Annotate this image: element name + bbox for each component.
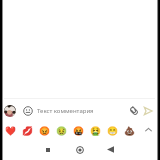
button[interactable]: Send comment: [143, 106, 153, 116]
button[interactable]: 🤢: [56, 125, 67, 136]
staticText: 🤢: [56, 126, 67, 136]
button[interactable]: 💩: [124, 125, 135, 136]
button[interactable]: 💋: [22, 125, 33, 136]
staticText: 🤮: [90, 126, 101, 136]
button[interactable]: Recent apps: [43, 145, 52, 154]
staticText: 😁: [107, 126, 118, 136]
staticText: 🤬: [73, 126, 84, 136]
button[interactable]: Home: [75, 145, 84, 154]
staticText: 😡: [39, 126, 50, 136]
button[interactable]: 😡: [39, 125, 50, 136]
button[interactable]: 😁: [107, 125, 118, 136]
staticText: 💩: [124, 126, 135, 136]
button[interactable]: 🤮: [90, 125, 101, 136]
button[interactable]: Back: [106, 145, 115, 154]
button[interactable]: Insert emoji: [23, 106, 33, 116]
staticText: ❤️: [5, 126, 16, 136]
button[interactable]: Attach file: [129, 106, 139, 116]
button[interactable]: Show more reactions: [143, 124, 154, 135]
staticText: Текст комментария: [37, 107, 94, 115]
button[interactable]: Your profile: [4, 105, 16, 117]
button[interactable]: ❤️: [5, 125, 16, 136]
button[interactable]: 🤬: [73, 125, 84, 136]
staticText: 💋: [22, 126, 33, 136]
button[interactable]: Текст комментария: [37, 104, 127, 117]
